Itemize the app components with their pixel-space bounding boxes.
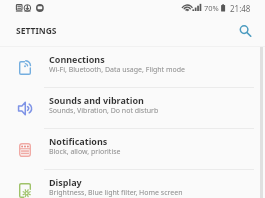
staticText: 21:48 xyxy=(230,3,251,14)
button[interactable]: Notifications xyxy=(0,129,265,170)
button[interactable]: Connections xyxy=(0,47,265,88)
staticText: 70% xyxy=(204,3,219,13)
button[interactable]: Search xyxy=(235,21,255,41)
button[interactable]: Display xyxy=(0,170,265,198)
staticText: Sounds, Vibration, Do not disturb xyxy=(49,106,159,116)
staticText: Wi-Fi, Bluetooth, Data usage, Flight mod… xyxy=(49,65,186,75)
staticText: Connections xyxy=(49,53,105,65)
staticText: Brightness, Blue light filter, Home scre… xyxy=(49,188,183,198)
staticText: Block, allow, prioritise xyxy=(49,147,121,157)
button[interactable]: Sounds and vibration xyxy=(0,88,265,129)
staticText: Notifications xyxy=(49,135,108,147)
staticText: Sounds and vibration xyxy=(49,94,144,106)
staticText: SETTINGS xyxy=(16,25,57,37)
staticText: Display xyxy=(49,176,82,188)
